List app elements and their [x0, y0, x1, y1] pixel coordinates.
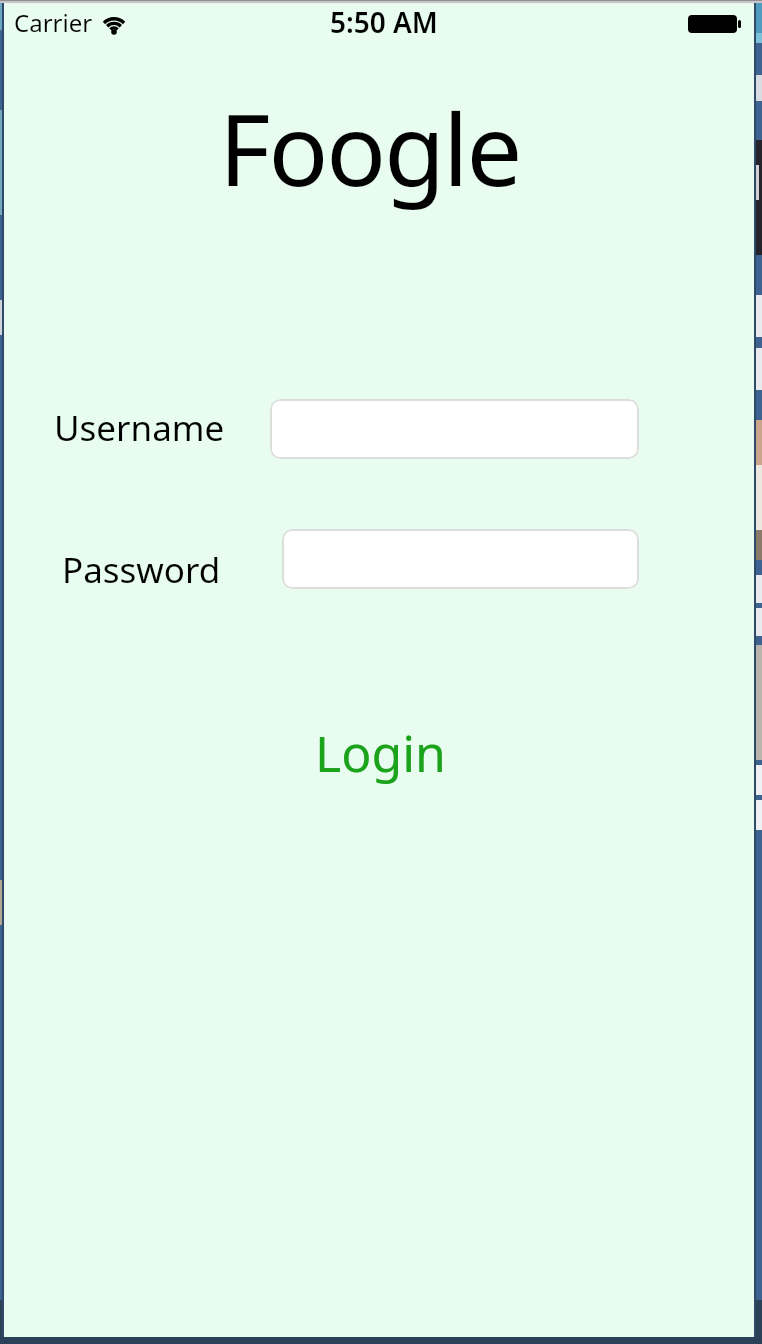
staticText: Login — [315, 719, 446, 787]
staticText: Carrier — [14, 6, 93, 39]
button[interactable]: Login — [300, 717, 460, 789]
staticText: 5:50 AM — [330, 3, 438, 41]
staticText: Username — [54, 404, 225, 452]
staticText: Password — [62, 546, 221, 594]
button[interactable] — [270, 399, 639, 459]
button[interactable] — [282, 529, 639, 589]
staticText: Foogle — [219, 80, 521, 215]
